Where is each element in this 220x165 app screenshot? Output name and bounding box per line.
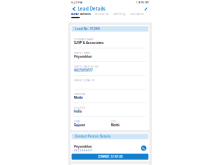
button[interactable]: Lead Details	[72, 5, 105, 12]
staticText: Follow Up	[95, 13, 109, 16]
staticText: Address	[74, 92, 85, 96]
staticText: 58%	[144, 1, 149, 4]
staticText: Morbi	[74, 96, 83, 100]
button[interactable]: Call	[141, 145, 146, 151]
staticText: CHANGE STATUS	[97, 155, 122, 159]
staticText: State	[74, 120, 81, 123]
staticText: GJVP & Associates	[74, 41, 104, 45]
staticText: 9825859517	[74, 68, 93, 72]
staticText: Lead Details	[78, 6, 105, 11]
staticText: Owner Mobile No	[74, 65, 99, 68]
staticText: Quotation	[130, 13, 144, 16]
staticText: Gujarat	[74, 123, 85, 127]
staticText: Contact Person Details	[75, 135, 111, 138]
staticText: City	[111, 120, 116, 123]
staticText: Company Name	[74, 38, 94, 41]
staticText: Lead No. V1,069	[75, 27, 100, 31]
staticText: 9825859517	[74, 149, 92, 152]
staticText: Priyambhai	[74, 54, 92, 58]
staticText: Country	[74, 106, 85, 109]
staticText: Meeting	[114, 13, 126, 16]
staticText: Owner Name	[74, 51, 91, 54]
staticText: India	[74, 109, 82, 113]
button[interactable]: Edit	[144, 7, 148, 11]
staticText: Basic Details	[71, 13, 90, 16]
staticText: Morbi	[111, 123, 120, 127]
staticText: Priyambhai	[74, 144, 92, 148]
staticText: Owner Email Id	[74, 79, 95, 82]
button[interactable]: CHANGE STATUS	[72, 154, 148, 160]
staticText: 4:27 PM	[71, 1, 82, 4]
staticText: 1.3Kb/s	[136, 1, 144, 4]
